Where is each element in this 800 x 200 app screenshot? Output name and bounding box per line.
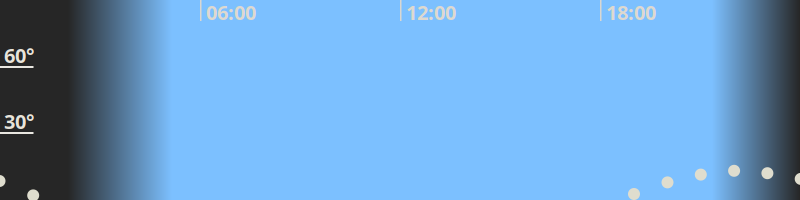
staticText: 60° bbox=[4, 42, 34, 69]
staticText: 12:00 bbox=[406, 0, 456, 26]
staticText: 18:00 bbox=[606, 0, 656, 26]
button[interactable]: Hourly temperature chart bbox=[0, 0, 800, 200]
staticText: 06:00 bbox=[206, 0, 256, 26]
staticText: 30° bbox=[4, 108, 34, 135]
